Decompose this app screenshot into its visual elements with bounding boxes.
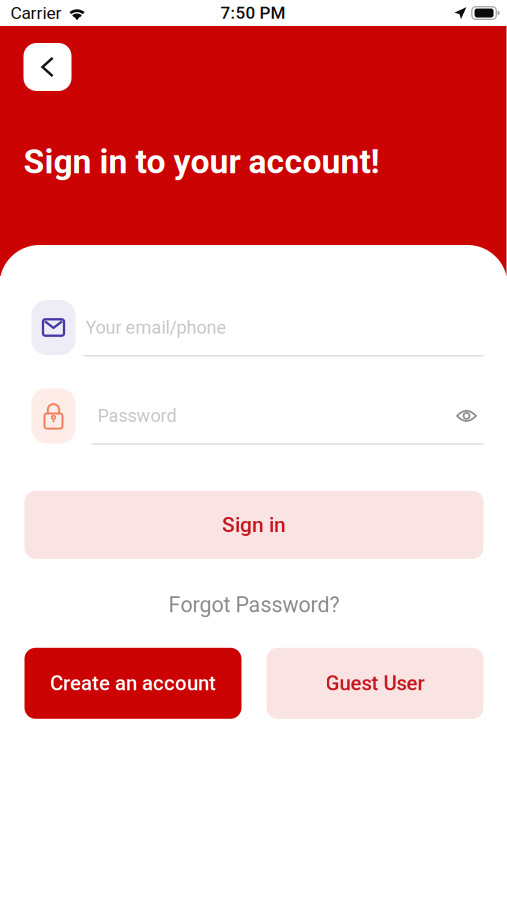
button[interactable]: Show password xyxy=(449,399,483,433)
button[interactable]: Guest User xyxy=(266,648,483,719)
staticText: Password xyxy=(97,405,176,426)
staticText: Sign in to your account! xyxy=(23,142,379,181)
staticText: Guest User xyxy=(325,671,424,695)
staticText: Forgot Password? xyxy=(168,592,339,617)
staticText: Sign in xyxy=(222,512,286,537)
staticText: Your email/phone xyxy=(85,317,226,338)
staticText: Create an account xyxy=(50,671,216,695)
button[interactable]: Forgot Password? xyxy=(24,591,483,619)
button[interactable]: Sign in xyxy=(24,491,483,559)
button[interactable]: Create an account xyxy=(24,648,241,719)
staticText: Carrier xyxy=(10,3,61,23)
button[interactable]: Back xyxy=(23,43,71,91)
staticText: 7:50 PM xyxy=(220,3,285,23)
